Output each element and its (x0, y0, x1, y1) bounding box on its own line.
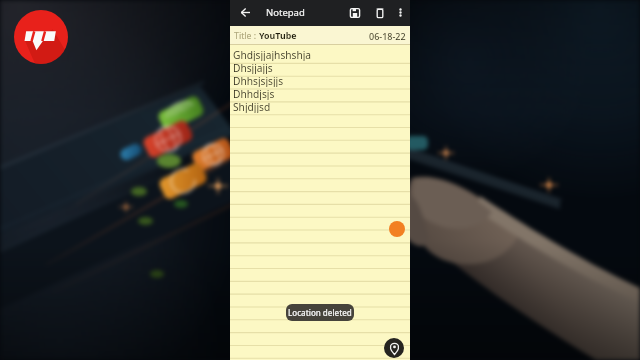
staticText: Notepad (266, 6, 305, 19)
button[interactable]: Add location (384, 338, 404, 358)
staticText: Title : (234, 30, 259, 42)
staticText: 06-18-22 (369, 30, 406, 42)
staticText: Ghdjsjjajhshshja (233, 48, 312, 61)
button[interactable]: Delete (370, 3, 389, 22)
button[interactable]: Back (235, 2, 255, 22)
staticText: Dhsjjajjs (233, 61, 273, 74)
button[interactable]: More options (391, 3, 409, 21)
staticText: Shjdjjsd (233, 100, 271, 113)
staticText: Dhhsjsjsjjs (233, 74, 284, 87)
staticText: Location deleted (288, 307, 352, 318)
staticText: YouTube (259, 30, 297, 42)
button[interactable]: Save (345, 3, 364, 22)
staticText: Dhhdjsjs (233, 87, 275, 100)
